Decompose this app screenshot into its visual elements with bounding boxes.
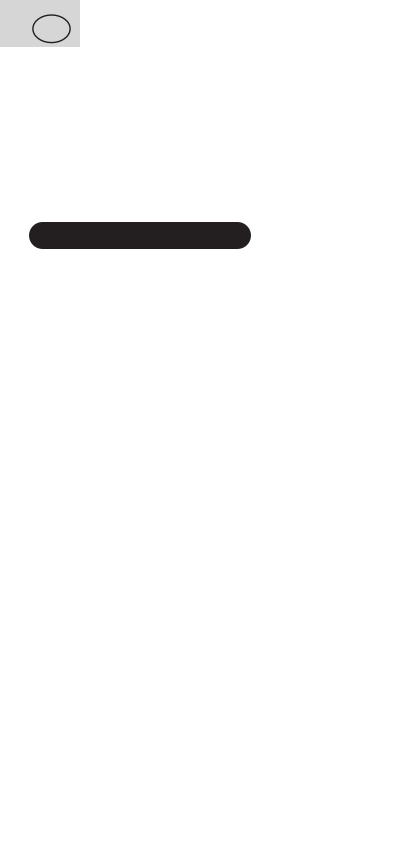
button[interactable]: Continue	[29, 222, 251, 249]
button[interactable]: Menu	[0, 0, 80, 47]
